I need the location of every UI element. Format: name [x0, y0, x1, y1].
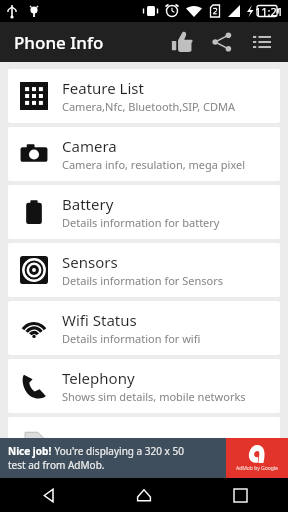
button[interactable]: Nice job!: [0, 438, 288, 478]
staticText: AdMob by Google: [236, 465, 278, 472]
button[interactable]: Battery: [8, 185, 280, 239]
staticText: Phone Info: [14, 31, 104, 54]
staticText: test ad from AdMob.: [8, 458, 105, 472]
button[interactable]: Share: [202, 22, 242, 62]
staticText: Camera,Nfc, Bluetooth,SIP, CDMA: [62, 99, 236, 114]
staticText: You're displaying a 320 x 50: [52, 444, 184, 458]
button[interactable]: Recent apps: [192, 478, 288, 512]
button[interactable]: Menu: [242, 22, 282, 62]
staticText: Telephony: [62, 368, 135, 388]
button[interactable]: Like: [162, 22, 202, 62]
staticText: Nice job!: [8, 444, 52, 458]
button[interactable]: Sensors: [8, 243, 280, 297]
staticText: Details information for battery: [62, 215, 220, 230]
staticText: Feature List: [62, 78, 144, 98]
staticText: Camera info, resulation, mega pixel: [62, 157, 246, 172]
staticText: Shows sim details, mobile networks: [62, 389, 246, 404]
staticText: Wifi Status: [62, 310, 137, 330]
staticText: Sim Manager: [62, 434, 156, 454]
button[interactable]: Wifi Status: [8, 301, 280, 355]
button[interactable]: Sim Manager: [8, 417, 280, 471]
button[interactable]: Telephony: [8, 359, 280, 413]
staticText: Camera: [62, 136, 117, 156]
button[interactable]: Home: [96, 478, 192, 512]
button[interactable]: Feature List: [8, 69, 280, 123]
button[interactable]: Back: [0, 478, 96, 512]
staticText: Details information for wifi: [62, 331, 201, 346]
button[interactable]: Camera: [8, 127, 280, 181]
staticText: 11:21: [255, 4, 284, 19]
staticText: Details information for Sensors: [62, 273, 223, 288]
staticText: Battery: [62, 194, 114, 214]
staticText: Sensors: [62, 252, 118, 272]
